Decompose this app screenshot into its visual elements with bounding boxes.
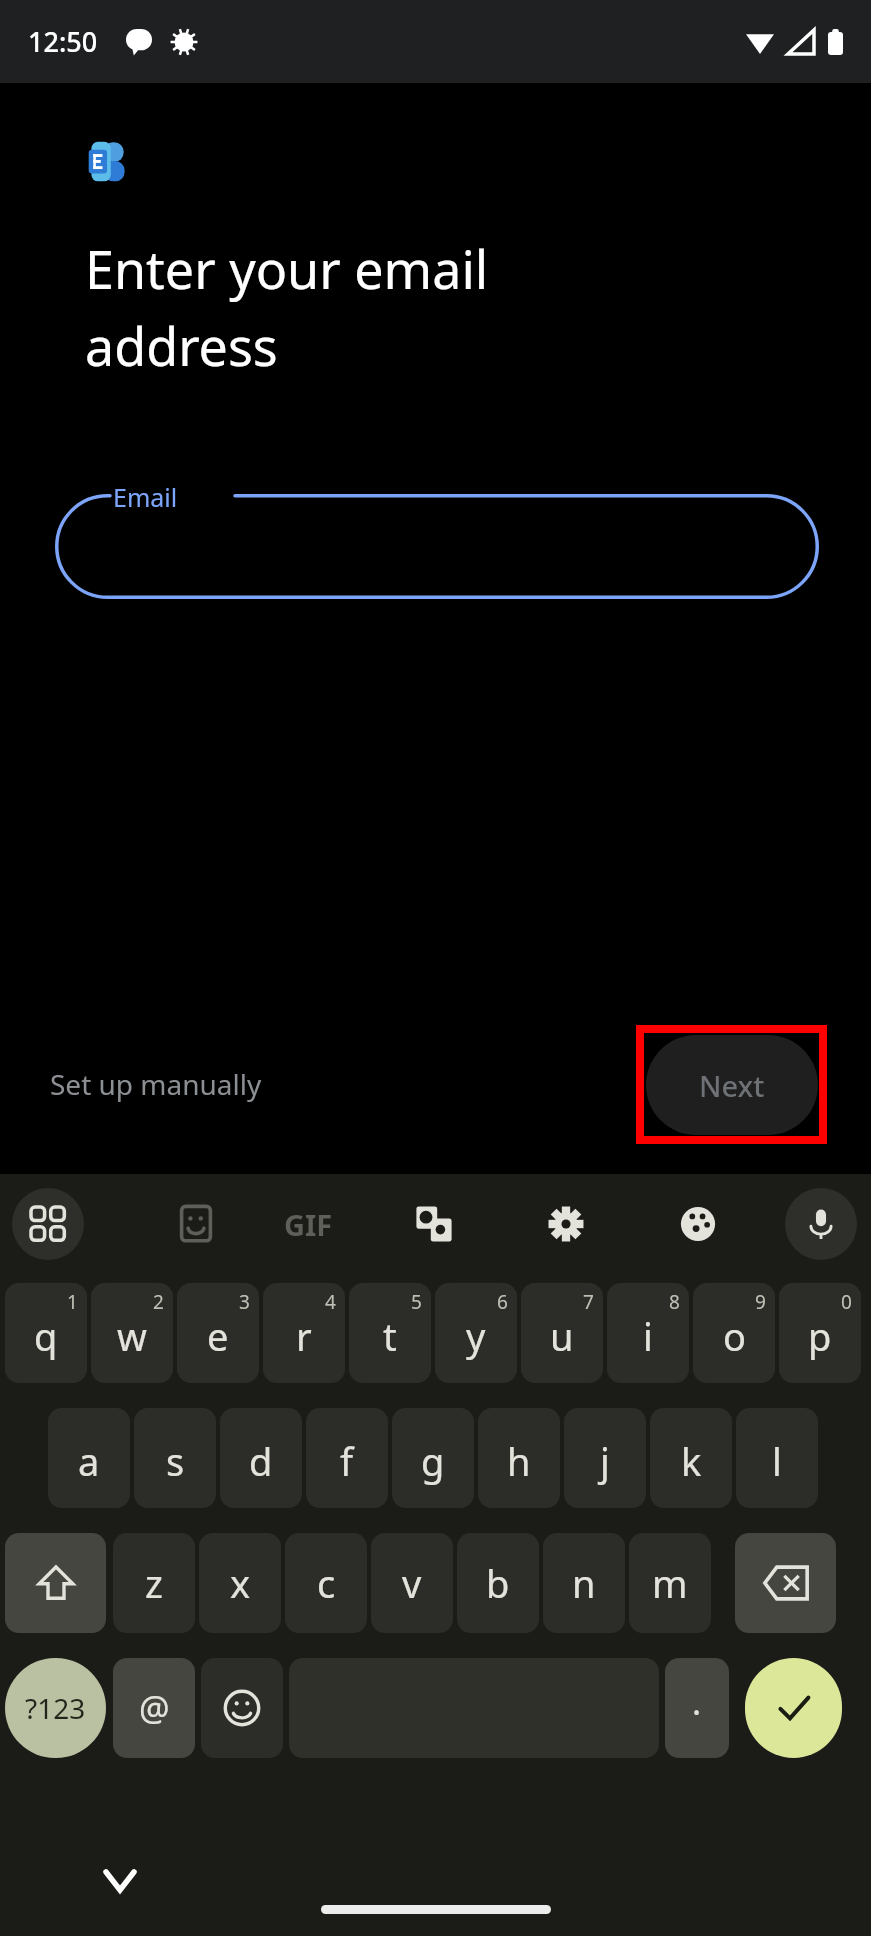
button[interactable]: Stickers [160,1188,232,1260]
button[interactable]: k [650,1408,732,1508]
button[interactable]: Voice input [785,1188,857,1260]
staticText: a [78,1435,100,1487]
staticText: b [486,1557,510,1609]
button[interactable]: ?123 [5,1658,106,1758]
staticText: e [207,1310,229,1362]
staticText: h [507,1435,531,1487]
staticText: 7 [583,1289,594,1315]
button[interactable]: j [564,1408,646,1508]
button[interactable]: u [521,1283,603,1383]
button[interactable]: Email [55,494,819,599]
button[interactable]: w [91,1283,173,1383]
staticText: d [249,1435,273,1487]
staticText: g [421,1435,445,1487]
button[interactable]: @ [113,1658,195,1758]
staticText: w [117,1310,147,1362]
button[interactable]: i [607,1283,689,1383]
staticText: 0 [841,1289,852,1315]
staticText: 5 [411,1289,422,1315]
staticText: @ [139,1685,170,1731]
button[interactable]: Settings [530,1188,602,1260]
button[interactable]: Emoji [201,1658,283,1758]
button[interactable]: Enter [745,1658,842,1758]
button[interactable]: GIF [272,1188,344,1260]
staticText: 6 [497,1289,508,1315]
button[interactable]: Shift [5,1533,106,1633]
staticText: y [466,1310,486,1362]
button[interactable]: n [543,1533,625,1633]
staticText: 2 [153,1289,164,1315]
button[interactable]: h [478,1408,560,1508]
staticText: v [402,1557,422,1609]
staticText: l [772,1435,782,1487]
button[interactable]: Set up manually [20,1043,292,1125]
staticText: t [383,1310,397,1362]
button[interactable]: Hide keyboard [90,1851,150,1911]
staticText: i [643,1310,653,1362]
button[interactable]: Apps [12,1188,84,1260]
button[interactable]: o [693,1283,775,1383]
staticText: p [808,1310,832,1362]
button[interactable]: v [371,1533,453,1633]
button[interactable]: r [263,1283,345,1383]
staticText: Email [113,480,178,514]
staticText: z [145,1557,163,1609]
button[interactable]: g [392,1408,474,1508]
staticText: ?123 [25,1689,86,1727]
staticText: x [230,1557,251,1609]
staticText: 9 [755,1289,766,1315]
button[interactable]: Next [646,1035,818,1135]
staticText: m [652,1557,688,1609]
staticText: Next [699,1066,765,1105]
button[interactable]: Translate [398,1188,470,1260]
staticText: c [317,1557,336,1609]
button[interactable]: m [629,1533,711,1633]
button[interactable]: q [5,1283,87,1383]
button[interactable]: . [665,1658,729,1758]
button[interactable]: e [177,1283,259,1383]
staticText: o [723,1310,746,1362]
button[interactable]: y [435,1283,517,1383]
staticText: f [340,1435,354,1487]
button[interactable]: Backspace [735,1533,836,1633]
staticText: u [550,1310,574,1362]
staticText: Enter your email address [85,233,489,381]
staticText: 8 [669,1289,680,1315]
staticText: j [600,1435,610,1487]
button[interactable]: l [736,1408,818,1508]
button[interactable]: t [349,1283,431,1383]
staticText: . [692,1679,702,1725]
staticText: Set up manually [50,1065,262,1103]
staticText: 1 [67,1289,78,1315]
button[interactable]: p [779,1283,861,1383]
staticText: 12:50 [28,23,98,60]
button[interactable]: z [113,1533,195,1633]
button[interactable]: f [306,1408,388,1508]
button[interactable]: a [48,1408,130,1508]
button[interactable]: c [285,1533,367,1633]
button[interactable]: d [220,1408,302,1508]
staticText: 4 [325,1289,336,1315]
staticText: 3 [239,1289,250,1315]
staticText: n [572,1557,596,1609]
staticText: s [166,1435,185,1487]
staticText: k [681,1435,702,1487]
staticText: GIF [284,1205,333,1244]
button[interactable]: s [134,1408,216,1508]
button[interactable]: x [199,1533,281,1633]
button[interactable]: Theme [662,1188,734,1260]
button[interactable]: b [457,1533,539,1633]
staticText: r [296,1310,312,1362]
staticText: q [34,1310,58,1362]
